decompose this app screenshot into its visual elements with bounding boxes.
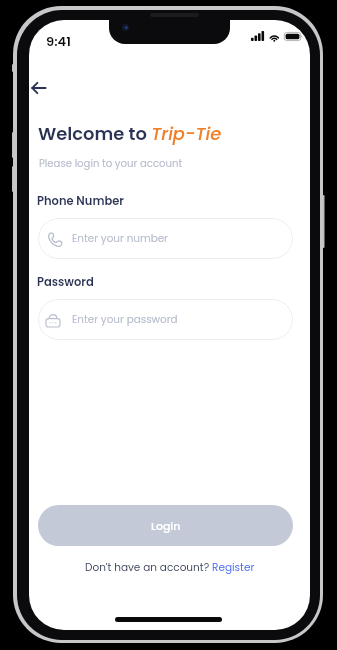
staticText: Please login to your account bbox=[39, 156, 183, 170]
button[interactable]: Login bbox=[38, 505, 293, 546]
button[interactable]: Enter your password bbox=[38, 299, 293, 340]
staticText: Don't have an account? bbox=[85, 560, 212, 575]
button[interactable]: Enter your number bbox=[38, 218, 293, 259]
staticText: Enter your password bbox=[72, 312, 178, 327]
button[interactable]: Register bbox=[212, 560, 255, 575]
staticText: 9:41 bbox=[46, 32, 71, 50]
staticText: Phone Number bbox=[37, 193, 125, 209]
staticText: Enter your number bbox=[72, 231, 168, 246]
staticText: Welcome to Trip-Tie bbox=[38, 121, 222, 146]
staticText: Password bbox=[37, 274, 94, 290]
staticText: Register bbox=[212, 560, 255, 575]
button[interactable]: Back bbox=[29, 73, 53, 103]
staticText: Login bbox=[151, 518, 181, 533]
